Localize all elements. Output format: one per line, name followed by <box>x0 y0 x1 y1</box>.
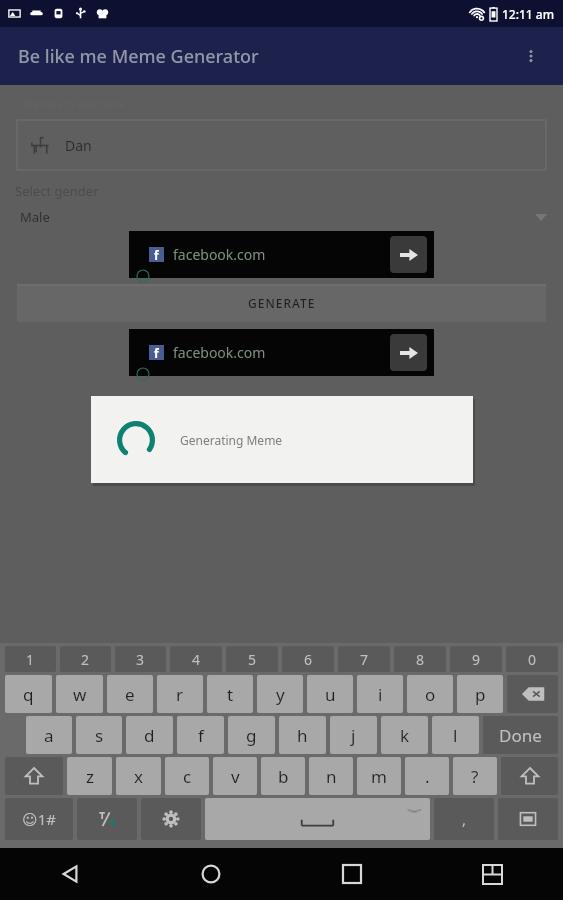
staticText: Done <box>499 724 542 747</box>
staticText: z <box>86 765 94 788</box>
button[interactable]: g <box>228 716 275 754</box>
staticText: u <box>325 683 336 706</box>
button[interactable]: n <box>309 757 353 795</box>
button[interactable]: Male <box>0 205 563 229</box>
button[interactable]: s <box>76 716 122 754</box>
staticText: ? <box>471 765 479 788</box>
button[interactable]: e <box>107 675 153 713</box>
staticText: ☺1# <box>22 809 56 829</box>
staticText: h <box>297 724 308 747</box>
button[interactable]: f <box>129 329 434 376</box>
staticText: Be like me Meme Generator <box>18 44 259 69</box>
button[interactable]: l <box>432 716 479 754</box>
button[interactable]: Home <box>140 848 281 900</box>
staticText: b <box>278 765 289 788</box>
button[interactable]: 1 <box>5 646 56 672</box>
button[interactable]: Recents <box>281 848 422 900</box>
button[interactable]: i <box>357 675 403 713</box>
button[interactable]: Backspace <box>507 675 558 713</box>
staticText: f <box>154 247 159 262</box>
staticText: 2 <box>81 650 90 669</box>
staticText: r <box>176 683 184 706</box>
button[interactable]: f <box>129 231 434 278</box>
staticText: n <box>326 765 337 788</box>
button[interactable]: More options <box>509 34 553 78</box>
button[interactable]: 9 <box>450 646 502 672</box>
staticText: i <box>378 683 383 706</box>
button[interactable]: h <box>279 716 326 754</box>
button[interactable]: Back <box>0 848 140 900</box>
staticText: 0 <box>528 650 537 669</box>
button[interactable]: 4 <box>170 646 222 672</box>
staticText: , <box>462 809 467 829</box>
button[interactable]: b <box>261 757 305 795</box>
button[interactable]: Open ad <box>390 334 427 371</box>
button[interactable]: x <box>116 757 161 795</box>
staticText: l <box>453 724 458 747</box>
button[interactable]: o <box>407 675 453 713</box>
button[interactable]: t <box>207 675 253 713</box>
button[interactable]: Keyboard settings <box>141 798 201 840</box>
button[interactable]: 6 <box>282 646 334 672</box>
staticText: k <box>400 724 410 747</box>
button[interactable]: p <box>457 675 503 713</box>
button[interactable]: c <box>165 757 209 795</box>
staticText: 8 <box>416 650 425 669</box>
button[interactable]: 0 <box>506 646 558 672</box>
button[interactable]: y <box>257 675 303 713</box>
button[interactable]: 5 <box>226 646 278 672</box>
staticText: a <box>44 724 54 747</box>
button[interactable]: 8 <box>394 646 446 672</box>
staticText: q <box>23 683 34 706</box>
button[interactable]: Split screen <box>422 848 563 900</box>
staticText: 9 <box>472 650 481 669</box>
button[interactable]: Open ad <box>390 236 427 273</box>
button[interactable]: 2 <box>60 646 111 672</box>
button[interactable]: Change language <box>77 798 137 840</box>
staticText: 3 <box>136 650 145 669</box>
button[interactable]: q <box>5 675 52 713</box>
staticText: j <box>351 724 356 747</box>
staticText: x <box>134 765 143 788</box>
staticText: Select gender <box>15 182 99 200</box>
staticText: p <box>475 683 486 706</box>
staticText: g <box>246 724 257 747</box>
staticText: m <box>371 765 387 788</box>
button[interactable]: ? <box>453 757 497 795</box>
button[interactable]: 7 <box>338 646 390 672</box>
button[interactable]: GENERATE <box>17 284 546 322</box>
button[interactable]: ☺1# <box>5 798 73 840</box>
staticText: e <box>125 683 135 706</box>
button[interactable]: a <box>26 716 72 754</box>
staticText: f <box>198 724 204 747</box>
button[interactable]: d <box>126 716 173 754</box>
button[interactable]: Space <box>205 798 430 840</box>
staticText: f <box>154 345 159 360</box>
staticText: s <box>95 724 104 747</box>
button[interactable]: Dan <box>17 120 546 170</box>
button[interactable]: Shift <box>5 757 63 795</box>
button[interactable]: u <box>307 675 353 713</box>
button[interactable]: Shift <box>501 757 558 795</box>
button[interactable]: j <box>330 716 377 754</box>
button[interactable]: Keyboard panel <box>498 798 558 840</box>
button[interactable]: r <box>157 675 203 713</box>
staticText: 4 <box>192 650 201 669</box>
staticText: 7 <box>360 650 369 669</box>
staticText: . <box>425 765 430 788</box>
button[interactable]: m <box>357 757 401 795</box>
button[interactable]: . <box>405 757 449 795</box>
button[interactable]: f <box>177 716 224 754</box>
button[interactable]: v <box>213 757 257 795</box>
staticText: 5 <box>248 650 257 669</box>
button[interactable]: , <box>434 798 494 840</box>
staticText: o <box>425 683 436 706</box>
button[interactable]: z <box>67 757 112 795</box>
staticText: 6 <box>304 650 313 669</box>
button[interactable]: 3 <box>115 646 166 672</box>
staticText: facebook.com <box>173 343 266 362</box>
button[interactable]: k <box>381 716 428 754</box>
button[interactable]: w <box>56 675 103 713</box>
button[interactable]: Done <box>483 716 558 754</box>
staticText: v <box>231 765 240 788</box>
